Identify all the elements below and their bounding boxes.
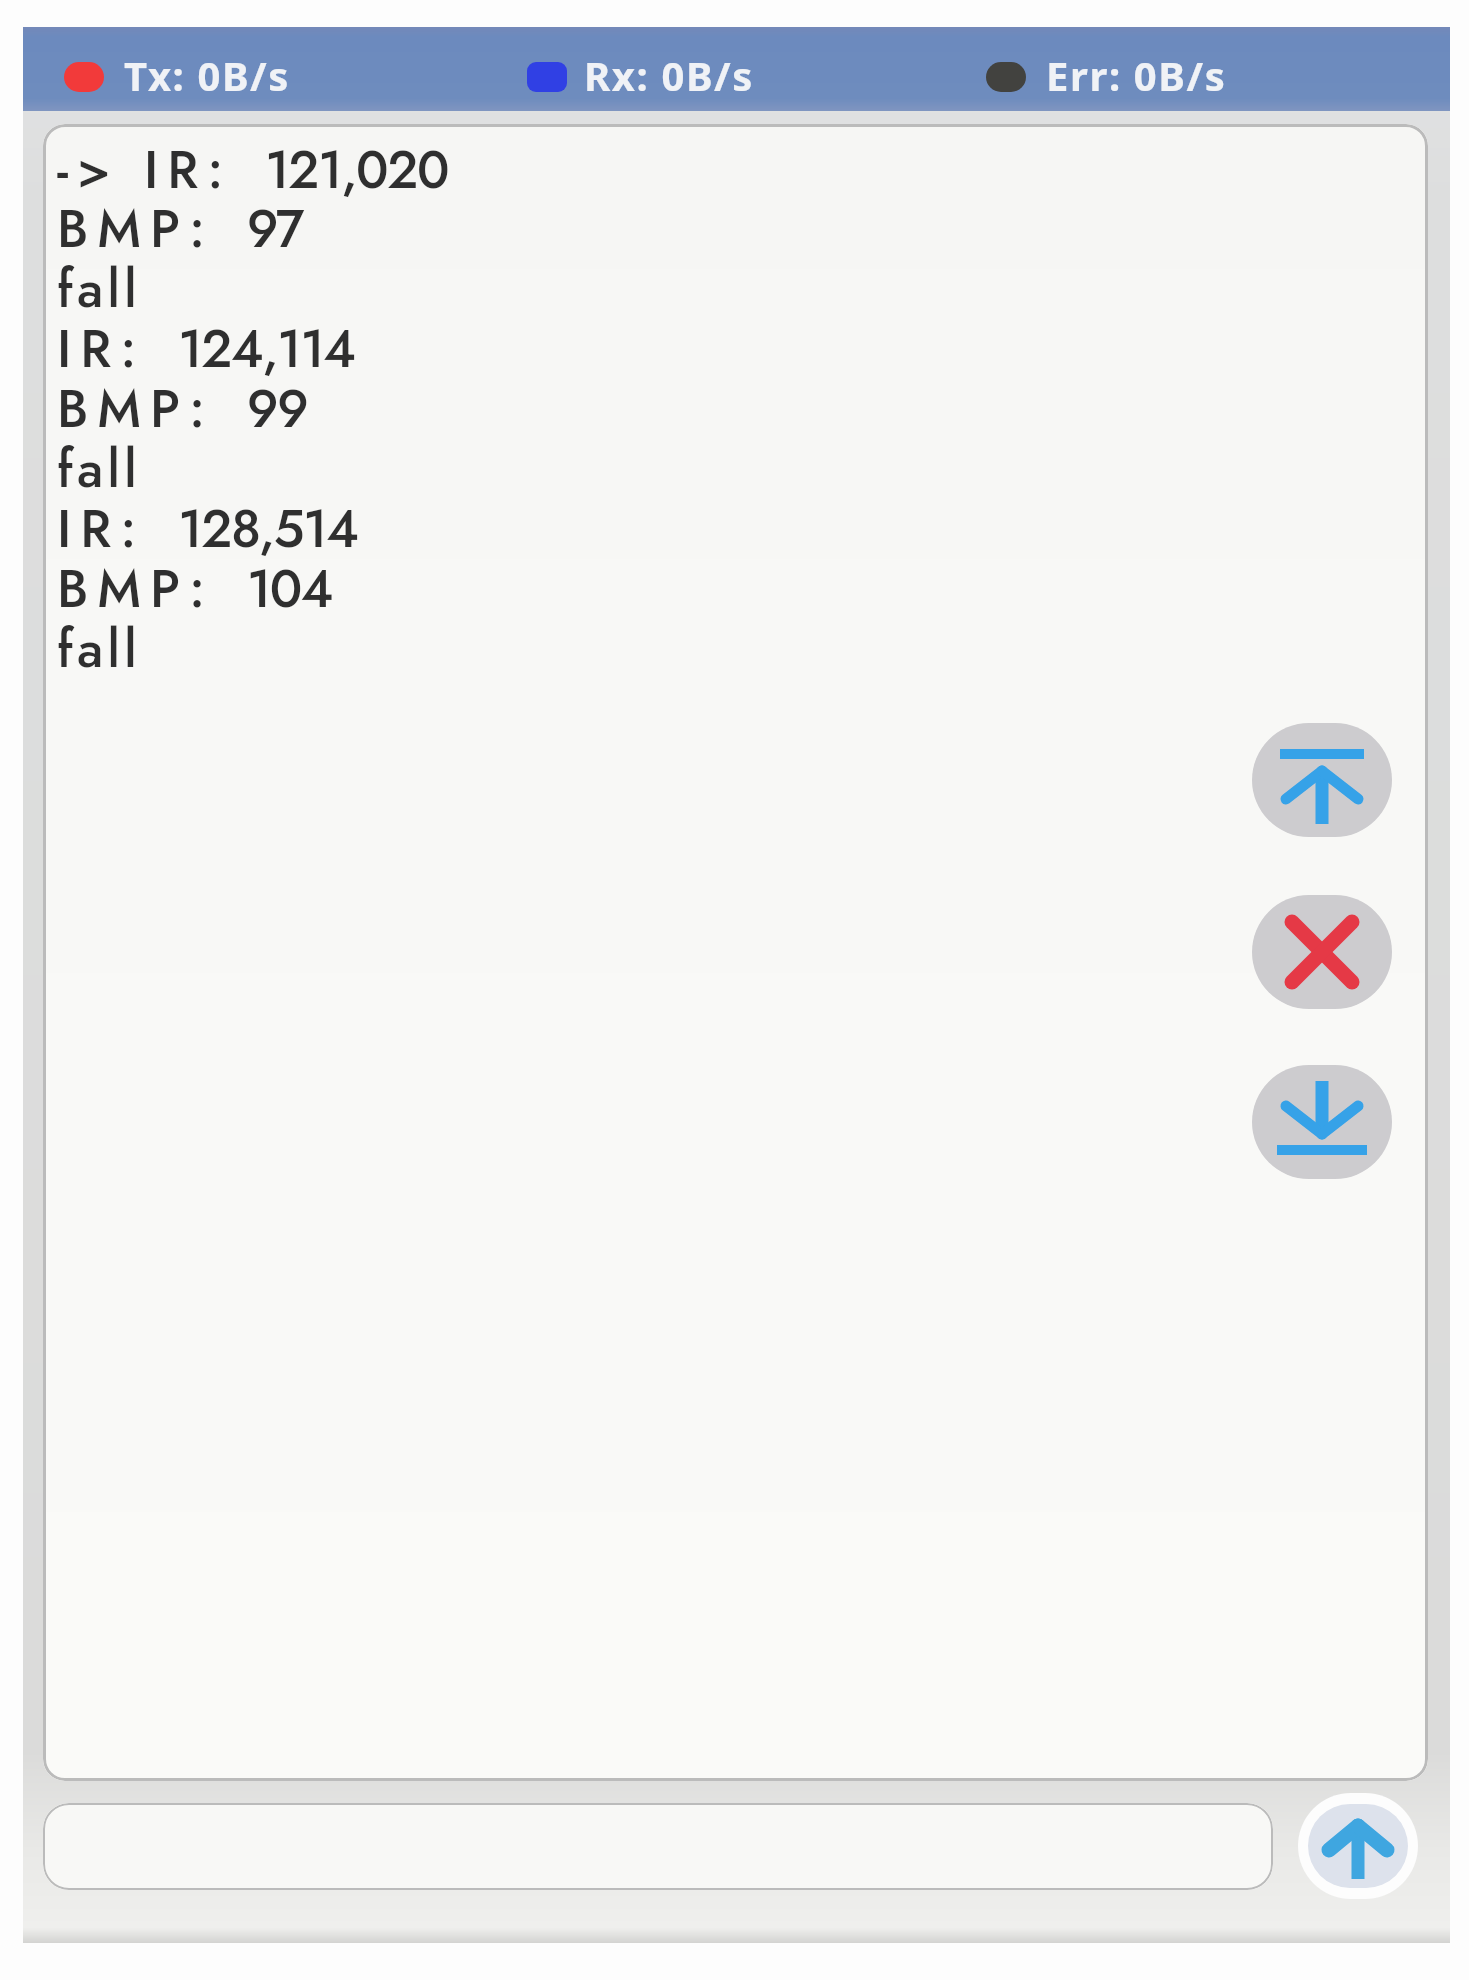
button[interactable]: Scroll to bottom bbox=[1252, 1065, 1392, 1179]
button[interactable]: Tx: 0B/s bbox=[52, 27, 362, 111]
button[interactable]: Rx: 0B/s bbox=[515, 27, 825, 111]
staticText: Rx: 0B/s bbox=[584, 48, 754, 102]
button[interactable]: Send bbox=[1298, 1793, 1418, 1899]
button[interactable]: Err: 0B/s bbox=[974, 27, 1284, 111]
staticText: Tx: 0B/s bbox=[124, 48, 290, 102]
button[interactable]: Command input bbox=[43, 1803, 1273, 1890]
button[interactable]: Scroll to top bbox=[1252, 723, 1392, 837]
button[interactable]: Clear console bbox=[1252, 895, 1392, 1009]
staticText: -> IR: 121,020 BMP: 97 fall IR: 124,114 … bbox=[57, 132, 448, 687]
staticText: Err: 0B/s bbox=[1046, 48, 1227, 102]
button[interactable]: -> IR: 121,020 BMP: 97 fall IR: 124,114 … bbox=[43, 124, 1428, 1781]
